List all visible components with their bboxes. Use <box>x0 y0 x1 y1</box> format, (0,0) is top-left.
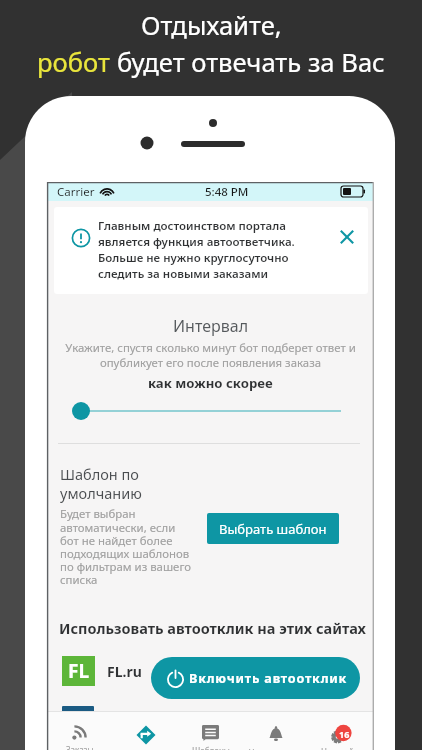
button[interactable]: Закрыть <box>335 225 359 249</box>
button[interactable]: Шаблоны <box>178 712 243 750</box>
staticText: Шаблоны <box>192 745 230 750</box>
staticText: Отдыхайте, <box>141 8 282 43</box>
button[interactable]: Автоответ <box>113 712 178 750</box>
button[interactable]: Включить автоотклик <box>151 657 360 699</box>
staticText: Будет выбран автоматически, если бот не … <box>60 506 192 587</box>
staticText: Шаблон по умолчанию <box>60 464 142 503</box>
staticText: Настройки <box>321 746 363 750</box>
staticText: 5:48 PM <box>205 184 249 200</box>
staticText: как можно скорее <box>148 374 273 392</box>
staticText: 16 <box>339 728 350 740</box>
staticText: Выбрать шаблон <box>219 520 327 538</box>
staticText: Главным достоинством портала является фу… <box>98 218 295 282</box>
staticText: Интервал <box>173 315 249 337</box>
staticText: Использовать автоотклик на этих сайтах <box>59 618 366 638</box>
staticText: FL <box>68 658 90 684</box>
staticText: Carrier <box>57 184 95 200</box>
other: Настройки <box>332 725 351 742</box>
staticText: робот <box>37 45 117 80</box>
staticText: Заказы <box>66 744 94 750</box>
button[interactable]: Заказы <box>47 712 112 750</box>
button[interactable]: FL <box>47 652 374 690</box>
button[interactable]: Выбрать шаблон <box>207 513 339 544</box>
button[interactable]: Уведомления <box>243 712 308 750</box>
staticText: Укажите, спустя сколько минут бот подбер… <box>65 340 356 370</box>
staticText: Уведомления <box>249 747 303 750</box>
staticText: будет отвечать за Вас <box>117 45 385 80</box>
staticText: FL.ru <box>107 662 142 681</box>
staticText: Включить автоотклик <box>189 670 348 687</box>
button[interactable]: Настройки <box>309 712 374 750</box>
